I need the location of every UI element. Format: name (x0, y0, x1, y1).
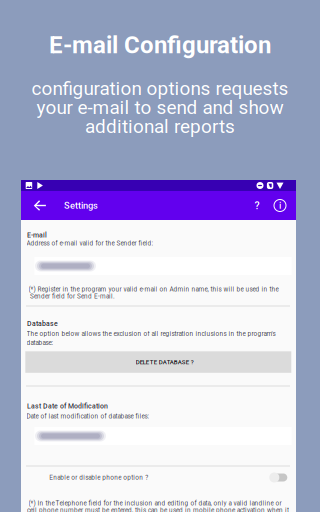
button[interactable]: DELETE DATABASE ? (25, 351, 291, 373)
staticText: additional reports (85, 115, 235, 138)
staticText: Date of last modification of database fi… (26, 412, 149, 420)
staticText: configuration options requests (31, 77, 288, 100)
staticText: DELETE DATABASE ? (136, 358, 194, 366)
staticText: The option below allows the exclusion of… (26, 330, 275, 337)
staticText: ? (254, 199, 259, 212)
staticText: Enable or disable phone option ? (49, 474, 148, 481)
button[interactable]: Help (247, 191, 267, 220)
button[interactable]: Back (27, 191, 53, 220)
button[interactable]: Enable or disable phone option ? (25, 468, 291, 486)
staticText: i (279, 200, 281, 211)
staticText: cell phone number must be entered, this … (27, 506, 289, 512)
staticText: (*) In the Telephone field for the inclu… (28, 499, 281, 507)
staticText: Database (27, 319, 58, 328)
staticText: your e-mail to send and show (36, 96, 283, 119)
staticText: (*) Register in the program your valid e… (28, 285, 278, 293)
staticText: Settings (64, 200, 98, 211)
staticText: database: (26, 339, 53, 346)
staticText: Last Date of Modification (27, 402, 108, 410)
staticText: E-mail (27, 231, 47, 239)
button[interactable]: About this screen (267, 191, 293, 220)
staticText: Address of e-mail valid for the Sender f… (26, 239, 153, 247)
staticText: Sender field for Send E-mail. (30, 292, 115, 300)
staticText: E-mail Configuration (49, 31, 271, 59)
